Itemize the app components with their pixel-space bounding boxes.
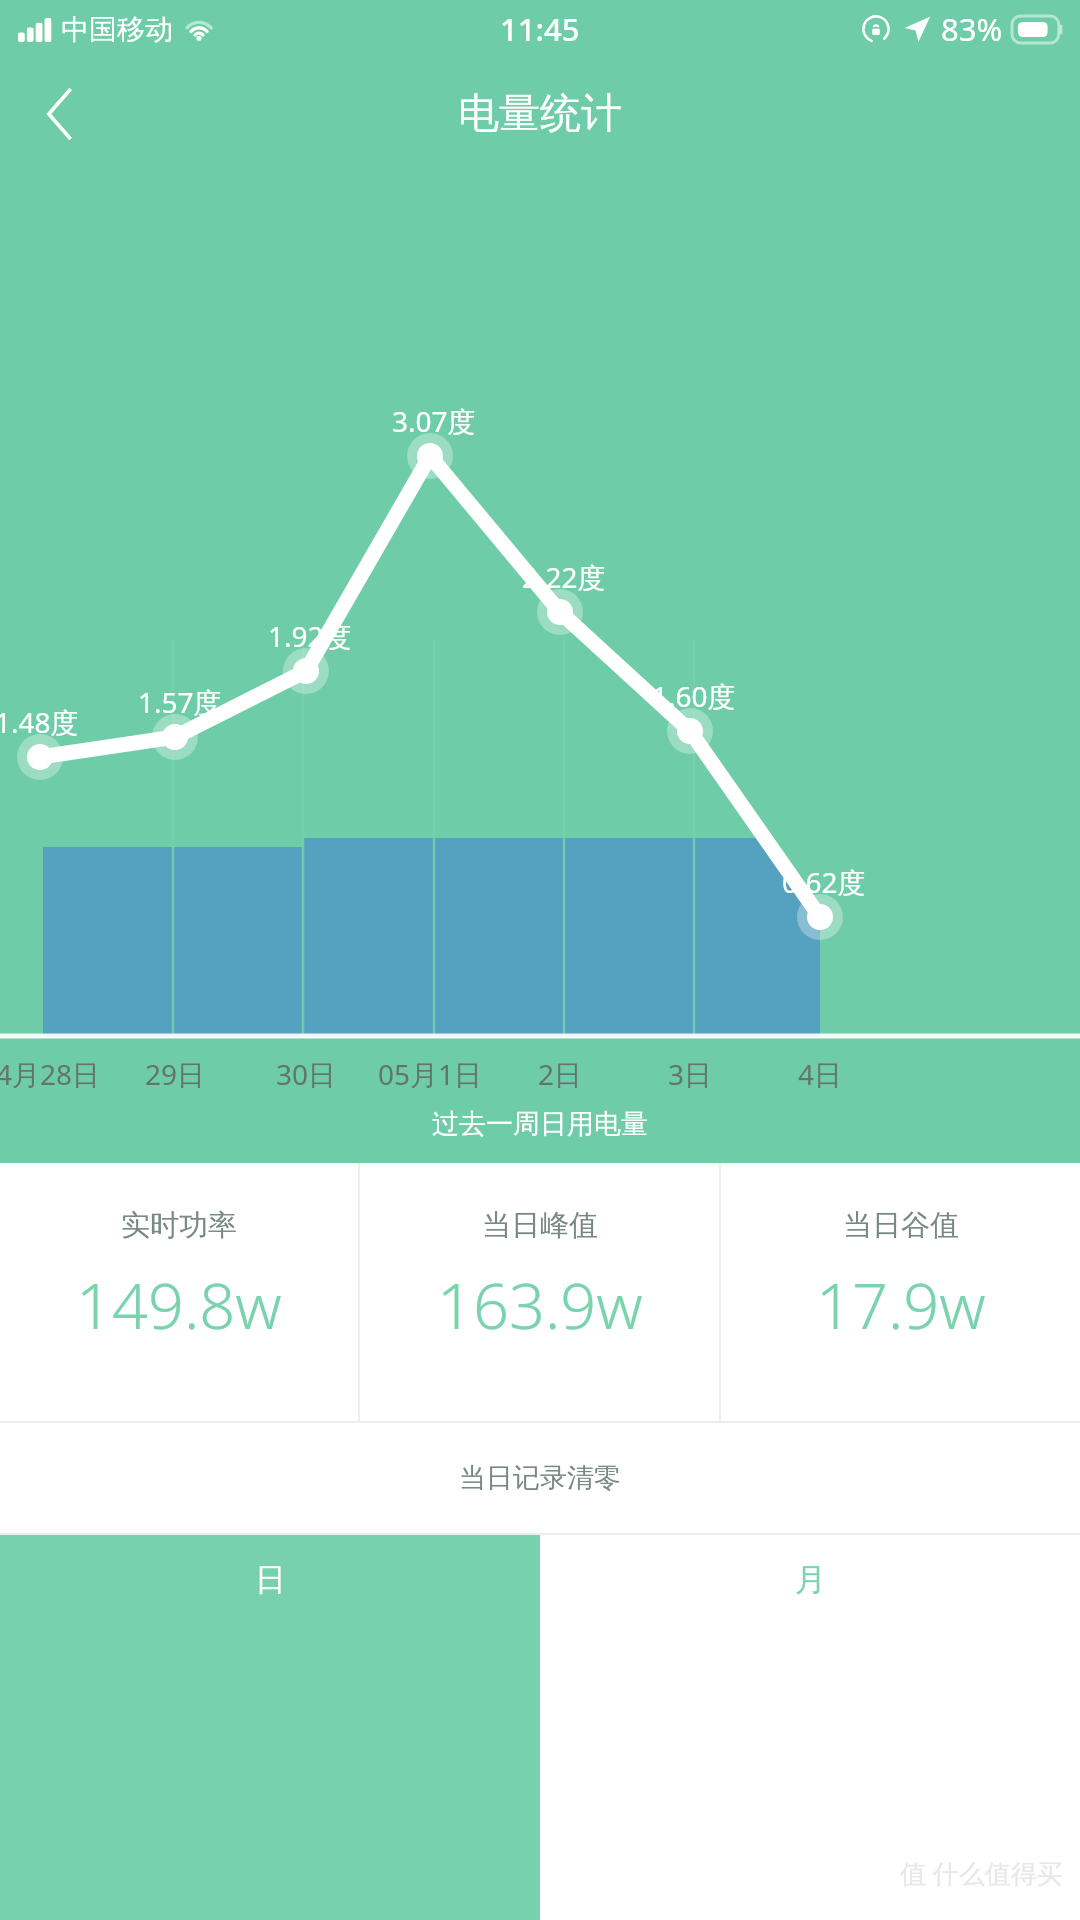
staticText: 1.60度 — [652, 677, 736, 715]
staticText: 29日 — [145, 1055, 206, 1093]
staticText: 2日 — [538, 1055, 583, 1093]
staticText: 0.62度 — [782, 863, 866, 901]
staticText: 11:45 — [500, 8, 580, 50]
staticText: 149.8w — [76, 1262, 282, 1348]
staticText: 3日 — [668, 1055, 713, 1093]
staticText: 05月1日 — [378, 1055, 483, 1093]
staticText: 1.57度 — [138, 683, 222, 721]
button[interactable]: 当日谷值 — [721, 1163, 1080, 1421]
staticText: 30日 — [276, 1055, 337, 1093]
button[interactable]: 实时功率 — [0, 1163, 358, 1421]
staticText: 当日峰值 — [482, 1207, 598, 1244]
staticText: 163.9w — [437, 1262, 643, 1348]
staticText: 电量统计 — [458, 88, 622, 140]
staticText: 2.22度 — [522, 558, 606, 596]
staticText: 当日谷值 — [843, 1207, 959, 1244]
staticText: 当日记录清零 — [459, 1461, 621, 1495]
button[interactable]: 当日峰值 — [360, 1163, 719, 1421]
button[interactable]: 日 — [0, 1535, 540, 1920]
staticText: 3.07度 — [392, 402, 476, 440]
button[interactable]: 当日记录清零 — [0, 1423, 1080, 1533]
button[interactable]: 月 — [540, 1535, 1080, 1920]
staticText: 4日 — [798, 1055, 843, 1093]
staticText: 日 — [255, 1560, 286, 1599]
staticText: 1.92度 — [268, 617, 352, 655]
button[interactable]: Back — [12, 66, 108, 162]
staticText: 1.48度 — [0, 703, 79, 741]
staticText: 中国移动 — [61, 12, 173, 47]
staticText: 过去一周日用电量 — [432, 1107, 648, 1141]
staticText: 值 什么值得买 — [900, 1855, 1063, 1891]
staticText: 月 — [795, 1560, 826, 1599]
staticText: 04月28日 — [0, 1055, 101, 1093]
staticText: 实时功率 — [121, 1207, 237, 1244]
staticText: 83% — [941, 8, 1003, 50]
staticText: 17.9w — [816, 1262, 986, 1348]
